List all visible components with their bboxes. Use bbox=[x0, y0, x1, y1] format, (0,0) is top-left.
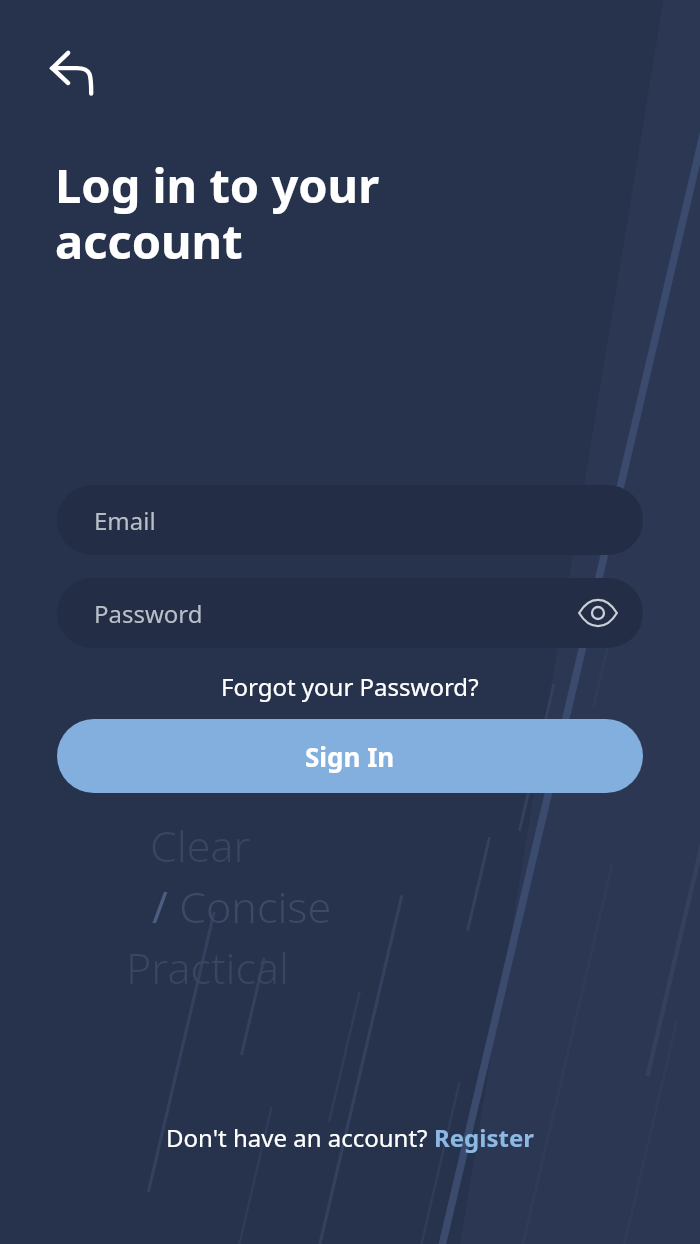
button[interactable]: Sign In bbox=[57, 719, 643, 793]
staticText: Forgot your Password? bbox=[221, 670, 479, 703]
staticText: Register bbox=[434, 1121, 534, 1154]
button[interactable]: Register bbox=[434, 1121, 534, 1154]
staticText: Password bbox=[94, 597, 203, 630]
staticText: Don't have an account? bbox=[166, 1121, 434, 1154]
button[interactable]: Forgot your Password? bbox=[209, 666, 491, 707]
button[interactable]: Show password bbox=[571, 586, 625, 640]
staticText: / bbox=[152, 877, 168, 936]
button[interactable]: Back bbox=[40, 40, 104, 104]
staticText: Email bbox=[94, 504, 156, 537]
button[interactable]: Password bbox=[57, 578, 643, 648]
button[interactable]: Email bbox=[57, 485, 643, 555]
staticText: Concise bbox=[168, 877, 332, 936]
staticText: Sign In bbox=[305, 739, 395, 774]
staticText: Log in to your account bbox=[55, 153, 380, 273]
staticText: Practical bbox=[126, 938, 290, 997]
staticText: Clear bbox=[150, 816, 251, 875]
